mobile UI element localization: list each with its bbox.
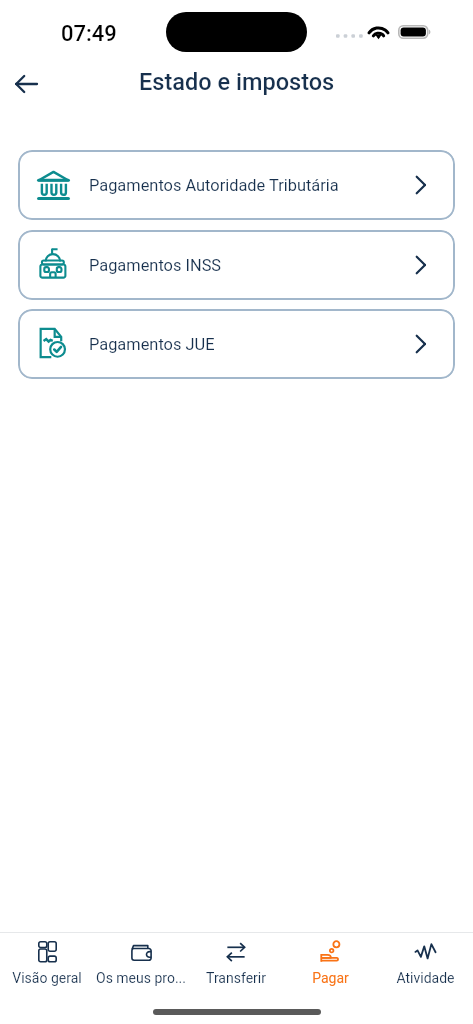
- button[interactable]: Pagamentos Autoridade Tributária: [18, 150, 455, 220]
- staticText: Visão geral: [12, 970, 82, 986]
- staticText: 07:49: [61, 21, 117, 47]
- staticText: Transferir: [206, 970, 266, 986]
- staticText: Pagamentos Autoridade Tributária: [89, 176, 413, 195]
- button[interactable]: Pagamentos JUE: [18, 309, 455, 379]
- staticText: Pagamentos JUE: [89, 335, 413, 354]
- staticText: Pagar: [312, 970, 349, 986]
- button[interactable]: Back: [4, 61, 50, 107]
- staticText: Os meus pro...: [96, 970, 186, 986]
- staticText: Estado e impostos: [139, 68, 335, 96]
- button[interactable]: Os meus pro...: [94, 933, 188, 993]
- button[interactable]: Pagar: [283, 933, 378, 993]
- button[interactable]: Pagamentos INSS: [18, 230, 455, 300]
- button[interactable]: Atividade: [378, 933, 473, 993]
- staticText: Atividade: [396, 970, 455, 986]
- button[interactable]: Visão geral: [0, 933, 94, 993]
- staticText: Pagamentos INSS: [89, 256, 413, 275]
- button[interactable]: Transferir: [188, 933, 283, 993]
